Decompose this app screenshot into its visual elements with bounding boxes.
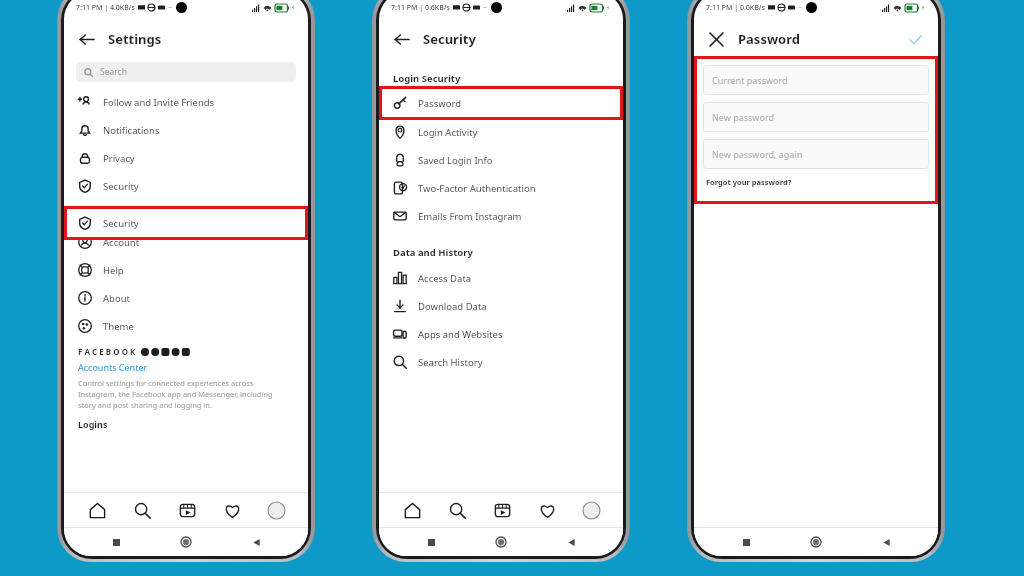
staticText: Help: [103, 264, 124, 277]
staticText: Ads: [103, 208, 120, 221]
button[interactable]: Back: [241, 528, 271, 556]
button[interactable]: Profile: [580, 499, 602, 521]
staticText: Logins: [78, 418, 108, 430]
button[interactable]: Notifications: [64, 116, 308, 144]
button[interactable]: Back: [389, 27, 413, 51]
button[interactable]: Recents: [731, 528, 761, 556]
button[interactable]: Home: [801, 528, 831, 556]
button[interactable]: Home: [171, 528, 201, 556]
staticText: Access Data: [418, 272, 472, 285]
staticText: About: [103, 292, 130, 305]
staticText: Current password: [712, 74, 788, 86]
staticText: Password: [418, 98, 461, 111]
staticText: Account: [103, 236, 140, 249]
staticText: Saved Login Info: [418, 154, 493, 167]
button[interactable]: Login Activity: [379, 118, 623, 146]
button[interactable]: Back: [556, 528, 586, 556]
button[interactable]: New password: [703, 102, 929, 132]
button[interactable]: Help: [64, 256, 308, 284]
staticText: Follow and Invite Friends: [103, 96, 215, 109]
button[interactable]: Emails From Instagram: [379, 202, 623, 230]
button[interactable]: Password: [379, 90, 623, 118]
staticText: Password: [738, 30, 800, 48]
button[interactable]: Account: [64, 228, 308, 256]
button[interactable]: Home: [486, 528, 516, 556]
button[interactable]: Search History: [379, 348, 623, 376]
button[interactable]: Two-Factor Authentication: [379, 174, 623, 202]
button[interactable]: Home: [85, 498, 109, 522]
button[interactable]: Security: [64, 172, 308, 200]
staticText: Download Data: [418, 300, 487, 313]
button[interactable]: Ads: [64, 200, 308, 228]
button[interactable]: Search: [130, 498, 154, 522]
staticText: Accounts Center: [78, 361, 148, 373]
button[interactable]: Close: [704, 27, 728, 51]
button[interactable]: Privacy: [64, 144, 308, 172]
staticText: Password: [418, 97, 461, 110]
staticText: Settings: [108, 30, 162, 48]
button[interactable]: Theme: [64, 312, 308, 340]
staticText: Privacy: [103, 152, 135, 165]
staticText: Search History: [418, 356, 483, 369]
staticText: New password, again: [712, 148, 803, 160]
button[interactable]: Recents: [416, 528, 446, 556]
staticText: Security: [103, 217, 139, 230]
staticText: Data and History: [393, 246, 473, 259]
button[interactable]: Profile: [265, 499, 287, 521]
staticText: Theme: [103, 320, 134, 333]
button[interactable]: Home: [400, 498, 424, 522]
staticText: New password: [712, 111, 774, 123]
button[interactable]: Follow and Invite Friends: [64, 88, 308, 116]
staticText: Login Activity: [418, 126, 478, 139]
button[interactable]: Apps and Websites: [379, 320, 623, 348]
button[interactable]: About: [64, 284, 308, 312]
button[interactable]: Back: [871, 528, 901, 556]
staticText: ··: [483, 3, 487, 13]
staticText: Forgot your password?: [706, 177, 792, 187]
button[interactable]: Back: [74, 27, 98, 51]
staticText: Security: [103, 180, 139, 193]
button[interactable]: Reels: [490, 498, 514, 522]
staticText: 7:11 PM | 0.0KB/s: [706, 3, 765, 13]
staticText: Control settings for connected experienc…: [78, 378, 273, 410]
staticText: ⚡: [291, 4, 296, 11]
button[interactable]: Access Data: [379, 264, 623, 292]
button[interactable]: Confirm: [904, 28, 926, 50]
staticText: Emails From Instagram: [418, 210, 522, 223]
staticText: 7:11 PM | 0.6KB/s: [391, 3, 450, 13]
button[interactable]: Forgot your password?: [706, 177, 792, 187]
button[interactable]: Activity: [220, 498, 244, 522]
staticText: Two-Factor Authentication: [418, 182, 536, 195]
button[interactable]: Reels: [175, 498, 199, 522]
button[interactable]: Download Data: [379, 292, 623, 320]
button[interactable]: Current password: [703, 65, 929, 95]
staticText: ··: [798, 3, 802, 13]
staticText: Apps and Websites: [418, 328, 503, 341]
staticText: ⚡: [921, 4, 926, 11]
staticText: ⚡: [606, 4, 611, 11]
staticText: F A C E B O O K: [78, 346, 136, 357]
staticText: Notifications: [103, 124, 160, 137]
staticText: 7:11 PM | 4.0KB/s: [76, 3, 135, 13]
button[interactable]: New password, again: [703, 139, 929, 169]
button[interactable]: Saved Login Info: [379, 146, 623, 174]
staticText: Login Security: [393, 72, 461, 85]
button[interactable]: Recents: [101, 528, 131, 556]
staticText: ··: [168, 3, 172, 13]
staticText: Security: [423, 30, 476, 48]
button[interactable]: Activity: [535, 498, 559, 522]
button[interactable]: Search: [445, 498, 469, 522]
button[interactable]: Accounts Center: [78, 361, 148, 373]
staticText: Search: [100, 66, 127, 78]
button[interactable]: Search: [76, 62, 296, 82]
